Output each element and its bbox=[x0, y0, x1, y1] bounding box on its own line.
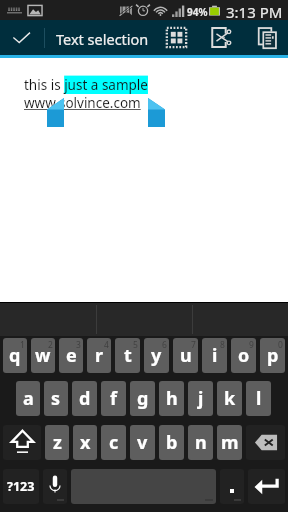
button[interactable]: Period bbox=[220, 469, 244, 504]
staticText: 2 bbox=[48, 339, 53, 351]
button[interactable]: t bbox=[115, 338, 140, 373]
button[interactable]: h bbox=[159, 381, 184, 416]
button[interactable]: Backspace bbox=[246, 425, 285, 460]
button[interactable]: Cut bbox=[199, 20, 243, 55]
button[interactable]: Enter bbox=[248, 469, 285, 504]
button[interactable]: e bbox=[59, 338, 83, 373]
staticText: 1 bbox=[20, 339, 25, 351]
staticText: 0 bbox=[278, 339, 283, 351]
staticText: 3 bbox=[76, 339, 81, 351]
staticText: n bbox=[195, 430, 207, 455]
staticText: b bbox=[166, 430, 178, 455]
staticText: x bbox=[80, 430, 91, 455]
button[interactable]: ?123 bbox=[3, 469, 39, 504]
staticText: i bbox=[212, 343, 218, 368]
staticText: 7 bbox=[191, 339, 196, 351]
button[interactable]: k bbox=[217, 381, 242, 416]
staticText: l bbox=[256, 386, 262, 411]
button[interactable]: Shift bbox=[3, 425, 41, 460]
staticText: g bbox=[137, 386, 149, 411]
button[interactable]: u bbox=[173, 338, 198, 373]
button[interactable]: o bbox=[231, 338, 256, 373]
button[interactable]: f bbox=[101, 381, 126, 416]
staticText: 94% bbox=[187, 5, 208, 19]
staticText: w bbox=[35, 343, 51, 368]
staticText: Text selection bbox=[56, 29, 149, 49]
button[interactable]: q bbox=[3, 338, 27, 373]
staticText: a bbox=[23, 386, 34, 411]
button[interactable]: z bbox=[45, 425, 69, 460]
staticText: 3:13 PM bbox=[226, 2, 283, 22]
staticText: ?123 bbox=[7, 478, 35, 495]
staticText: d bbox=[79, 386, 91, 411]
staticText: t bbox=[124, 343, 132, 368]
staticText: q bbox=[9, 343, 21, 368]
staticText: this is just a sample bbox=[24, 76, 148, 94]
staticText: v bbox=[137, 430, 148, 455]
staticText: r bbox=[95, 343, 104, 368]
button[interactable]: x bbox=[73, 425, 97, 460]
staticText: f bbox=[110, 386, 117, 411]
staticText: s bbox=[51, 386, 61, 411]
button[interactable]: Done bbox=[0, 20, 44, 55]
button[interactable]: b bbox=[159, 425, 184, 460]
button[interactable]: c bbox=[101, 425, 126, 460]
staticText: j bbox=[198, 386, 204, 411]
button[interactable]: v bbox=[130, 425, 155, 460]
staticText: e bbox=[66, 343, 77, 368]
staticText: www.solvince.com bbox=[24, 94, 141, 112]
button[interactable]: a bbox=[16, 381, 40, 416]
button[interactable]: y bbox=[144, 338, 169, 373]
button[interactable]: g bbox=[130, 381, 155, 416]
button[interactable]: r bbox=[87, 338, 111, 373]
staticText: y bbox=[151, 343, 162, 368]
staticText: p bbox=[267, 343, 279, 368]
staticText: 5 bbox=[133, 339, 138, 351]
button[interactable]: j bbox=[188, 381, 213, 416]
staticText: 8 bbox=[220, 339, 225, 351]
button[interactable]: Voice input bbox=[43, 469, 67, 504]
staticText: 6 bbox=[162, 339, 167, 351]
staticText: 9 bbox=[249, 339, 254, 351]
button[interactable]: i bbox=[202, 338, 227, 373]
button[interactable]: p bbox=[260, 338, 285, 373]
button[interactable]: Copy bbox=[244, 20, 288, 55]
button[interactable]: l bbox=[246, 381, 271, 416]
staticText: c bbox=[109, 430, 119, 455]
staticText: z bbox=[53, 430, 62, 455]
staticText: o bbox=[238, 343, 250, 368]
staticText: h bbox=[166, 386, 178, 411]
button[interactable]: Select all bbox=[154, 20, 198, 55]
button[interactable]: m bbox=[217, 425, 242, 460]
button[interactable]: w bbox=[31, 338, 55, 373]
staticText: 4 bbox=[104, 339, 109, 351]
button[interactable]: n bbox=[188, 425, 213, 460]
staticText: k bbox=[224, 386, 236, 411]
staticText: m bbox=[221, 430, 239, 455]
button[interactable]: s bbox=[44, 381, 68, 416]
staticText: u bbox=[180, 343, 192, 368]
button[interactable]: d bbox=[72, 381, 97, 416]
